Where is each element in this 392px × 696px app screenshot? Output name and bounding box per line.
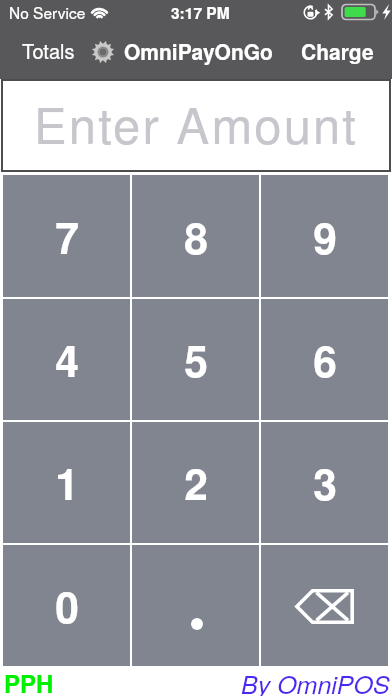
button[interactable]: 4	[3, 299, 130, 420]
staticText: 3	[313, 452, 337, 513]
staticText: Totals	[22, 36, 75, 65]
button[interactable]: Decimal point	[132, 545, 259, 666]
staticText: 8	[184, 206, 208, 267]
staticText: 0	[55, 575, 79, 636]
staticText: 5	[184, 329, 208, 390]
staticText: 4	[55, 329, 79, 390]
staticText: 3:17 PM	[171, 2, 230, 24]
button[interactable]: 3	[261, 422, 388, 543]
button[interactable]: 5	[132, 299, 259, 420]
staticText: 7	[55, 206, 79, 267]
button[interactable]: 1	[3, 422, 130, 543]
staticText: OmniPayOnGo	[124, 36, 273, 66]
staticText: By OmniPOS	[241, 666, 390, 696]
button[interactable]: 6	[261, 299, 388, 420]
button[interactable]: 8	[132, 175, 259, 297]
staticText: 6	[313, 329, 337, 390]
button[interactable]: Charge	[287, 24, 392, 79]
button[interactable]: 9	[261, 175, 388, 297]
button[interactable]: 7	[3, 175, 130, 297]
button[interactable]: Settings	[83, 24, 124, 79]
staticText: 2	[184, 452, 208, 513]
button[interactable]: Backspace	[261, 545, 388, 666]
staticText: Enter Amount	[34, 88, 359, 158]
button[interactable]: 2	[132, 422, 259, 543]
button[interactable]: 0	[3, 545, 130, 666]
button[interactable]: Enter Amount	[2, 80, 390, 171]
button[interactable]: Totals	[0, 24, 83, 79]
staticText: Charge	[301, 36, 374, 66]
staticText: 9	[313, 206, 337, 267]
button[interactable]: PPH	[4, 666, 54, 696]
staticText: No Service	[9, 1, 86, 23]
staticText: 1	[55, 452, 79, 513]
